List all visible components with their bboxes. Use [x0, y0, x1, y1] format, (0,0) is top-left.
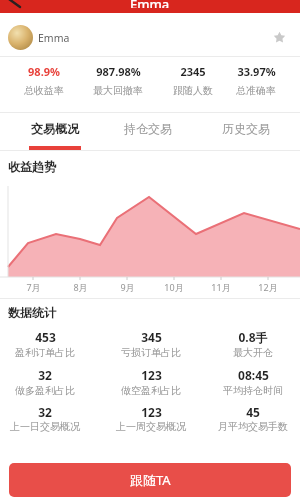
staticText: 总收益率	[24, 84, 64, 97]
button[interactable]	[4, 0, 24, 13]
staticText: 平均持仓时间	[223, 384, 283, 397]
staticText: 345	[141, 329, 162, 345]
staticText: 33.97%	[237, 64, 276, 79]
button[interactable]	[0, 13, 300, 56]
staticText: 持仓交易	[124, 121, 172, 136]
staticText: 做多盈利占比	[15, 384, 75, 397]
staticText: 上一日交易概况	[10, 420, 80, 433]
staticText: 9月	[120, 281, 135, 293]
staticText: 跟随人数	[173, 84, 213, 97]
staticText: 45	[246, 404, 260, 420]
staticText: 最大回撤率	[93, 84, 143, 97]
staticText: 0.8手	[238, 329, 268, 345]
staticText: 7月	[26, 281, 41, 293]
staticText: 盈利订单占比	[15, 346, 75, 359]
staticText: 98.9%	[28, 64, 60, 79]
staticText: 123	[141, 404, 162, 420]
staticText: 32	[38, 367, 52, 383]
staticText: 月平均交易手数	[218, 420, 288, 433]
staticText: 453	[35, 329, 56, 345]
staticText: Emma	[130, 0, 170, 8]
staticText: 收益趋势	[8, 159, 56, 174]
button[interactable]: 交易概况	[13, 118, 97, 138]
staticText: 跟随TA	[130, 471, 171, 489]
staticText: 做空盈利占比	[121, 384, 181, 397]
staticText: 08:45	[238, 367, 269, 383]
staticText: 交易概况	[31, 121, 79, 136]
button[interactable]	[271, 30, 287, 46]
staticText: 亏损订单占比	[121, 346, 181, 359]
staticText: 10月	[164, 281, 184, 293]
staticText: 11月	[211, 281, 231, 293]
staticText: 上一周交易概况	[116, 420, 186, 433]
staticText: 32	[38, 404, 52, 420]
staticText: 最大开仓	[233, 346, 273, 359]
staticText: 12月	[258, 281, 278, 293]
staticText: 历史交易	[222, 121, 270, 136]
staticText: 123	[141, 367, 162, 383]
staticText: 总准确率	[236, 84, 276, 97]
staticText: 987.98%	[96, 64, 141, 79]
staticText: 数据统计	[8, 305, 56, 320]
staticText: 8月	[73, 281, 88, 293]
button[interactable]: 持仓交易	[106, 118, 190, 138]
staticText: Emma	[38, 31, 70, 45]
button[interactable]: 历史交易	[204, 118, 288, 138]
button[interactable]: Emma	[0, 0, 300, 13]
staticText: 2345	[180, 64, 206, 79]
button[interactable]: 跟随TA	[9, 463, 291, 497]
